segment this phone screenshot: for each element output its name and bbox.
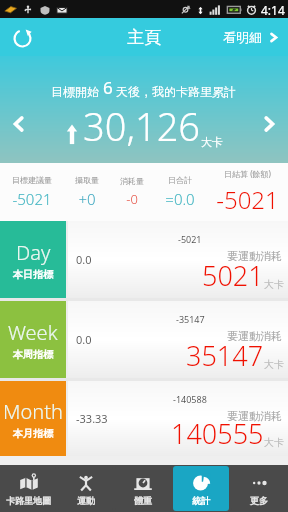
staticText: 大卡 [264, 358, 284, 371]
staticText: 日合計 [168, 175, 192, 185]
button[interactable]: 目標建議量 [0, 163, 63, 221]
staticText: 運動 [77, 495, 95, 506]
staticText: -0 [126, 190, 138, 208]
button[interactable]: Month [0, 381, 288, 456]
staticText: 0.0 [76, 252, 92, 267]
staticText: 6 [103, 76, 113, 99]
button[interactable]: 日合計 [154, 163, 206, 221]
staticText: 大卡 [264, 278, 284, 291]
button[interactable]: 統計 [173, 466, 229, 511]
staticText: 本日指標 [13, 268, 53, 281]
staticText: 大卡 [264, 436, 284, 449]
button[interactable]: 消耗量 [110, 163, 154, 221]
staticText: 5021 [202, 257, 264, 294]
button[interactable]: 卡路里地圖 [1, 466, 56, 511]
button[interactable]: 更多 [231, 466, 287, 511]
staticText: 要運動消耗 [227, 329, 282, 343]
staticText: 140555 [171, 415, 264, 452]
staticText: -5021 [216, 183, 279, 216]
button[interactable]: 攝取量 [63, 163, 110, 221]
staticText: Week [8, 319, 58, 346]
staticText: 目標建議量 [12, 175, 52, 185]
staticText: 要運動消耗 [227, 409, 282, 423]
button[interactable]: Day [0, 221, 288, 298]
staticText: 4:14 [261, 2, 285, 18]
staticText: 更多 [250, 495, 268, 506]
button[interactable]: Week [0, 301, 288, 378]
staticText: 消耗量 [120, 176, 144, 186]
staticText: 攝取量 [75, 175, 99, 185]
staticText: -35147 [176, 313, 205, 325]
button[interactable]: Previous [0, 96, 38, 152]
staticText: +0 [78, 189, 96, 209]
staticText: 看明細 [223, 29, 262, 45]
staticText: -5021 [178, 233, 202, 245]
staticText: -33.33 [76, 411, 108, 426]
staticText: 天後，我的卡路里累計 [113, 83, 237, 99]
staticText: Month [3, 398, 63, 425]
button[interactable]: 看明細 [215, 18, 288, 56]
staticText: 主頁 [127, 27, 161, 48]
button[interactable]: 日結算 (餘額) [206, 163, 288, 221]
staticText: 統計 [192, 495, 210, 506]
staticText: 大卡 [201, 135, 223, 149]
staticText: -5021 [12, 189, 52, 209]
staticText: 要運動消耗 [227, 249, 282, 263]
button[interactable]: 運動 [58, 466, 113, 511]
button[interactable]: Next [250, 96, 288, 152]
staticText: 本周指標 [13, 348, 53, 361]
staticText: 日結算 (餘額) [224, 168, 271, 179]
button[interactable]: 體重 [115, 466, 171, 511]
button[interactable]: Refresh [0, 18, 44, 56]
staticText: 35147 [186, 337, 264, 374]
staticText: 0.0 [76, 332, 92, 347]
staticText: 30,126 [83, 100, 201, 152]
staticText: 體重 [134, 495, 152, 506]
staticText: -140588 [173, 393, 207, 405]
staticText: 本月指標 [13, 427, 53, 440]
staticText: 卡路里地圖 [6, 495, 51, 506]
staticText: 目標開始 [51, 83, 103, 99]
staticText: Day [16, 239, 51, 266]
staticText: =0.0 [165, 189, 195, 209]
